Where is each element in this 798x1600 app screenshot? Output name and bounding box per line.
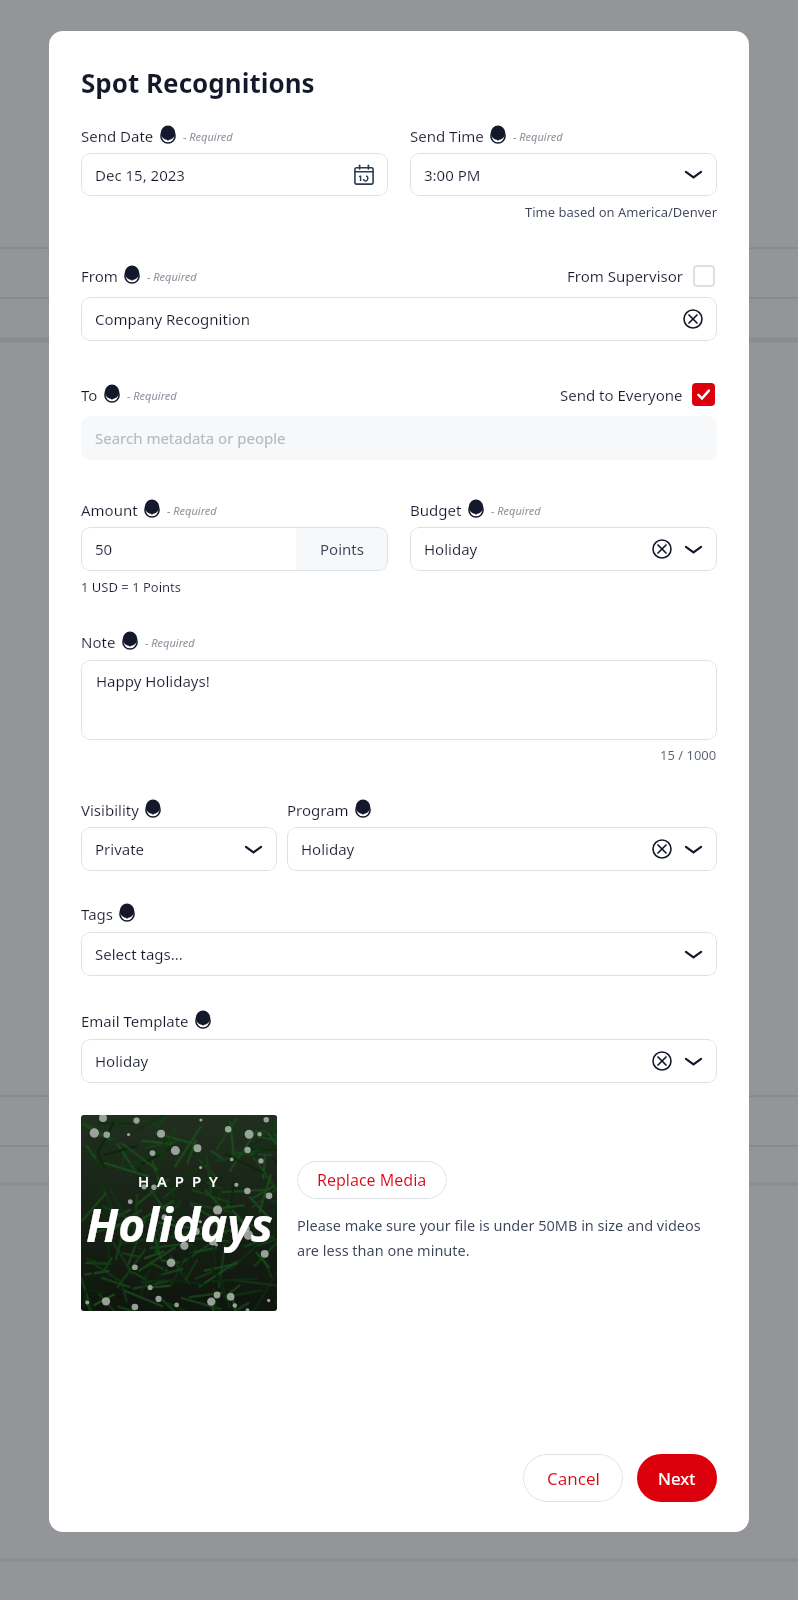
staticText: - Required (147, 269, 197, 284)
staticText: Please make sure your file is under 50MB… (297, 1215, 717, 1260)
staticText: - Required (167, 503, 217, 518)
staticText: Budget (410, 500, 462, 520)
staticText: - Required (127, 388, 177, 403)
other: Clear (652, 839, 672, 859)
button[interactable]: From Supervisor (565, 263, 717, 289)
staticText: Program (287, 800, 349, 820)
staticText: Happy Holidays! (96, 671, 210, 691)
staticText: Send Time (410, 126, 484, 146)
button[interactable]: Next (637, 1454, 717, 1502)
staticText: 50 (95, 539, 113, 559)
staticText: - Required (145, 635, 195, 650)
staticText: Company Recognition (95, 309, 251, 329)
button[interactable]: 3:00 PM (410, 153, 717, 196)
staticText: Time based on America/Denver (525, 203, 717, 221)
staticText: Visibility (81, 800, 139, 820)
button[interactable]: Replace Media (297, 1161, 447, 1199)
button[interactable]: Send to Everyone (558, 381, 717, 408)
staticText: - Required (491, 503, 541, 518)
button[interactable]: Select tags... (81, 932, 717, 976)
button[interactable]: Holiday (410, 527, 717, 571)
staticText: Holiday (301, 839, 355, 859)
staticText: Send Date (81, 126, 154, 146)
button[interactable]: Happy Holidays! (81, 660, 717, 740)
staticText: Select tags... (95, 944, 183, 964)
staticText: Points (320, 539, 364, 559)
staticText: Replace Media (317, 1169, 427, 1191)
staticText: Next (658, 1467, 696, 1490)
staticText: Private (95, 839, 145, 859)
staticText: Cancel (547, 1467, 600, 1490)
staticText: Email Template (81, 1011, 189, 1031)
staticText: 15 / 1000 (660, 746, 717, 764)
other: Clear (652, 1051, 672, 1071)
staticText: Holidays (86, 1193, 273, 1256)
other: Clear (652, 539, 672, 559)
button[interactable]: Search metadata or people (81, 416, 717, 460)
staticText: Holiday (95, 1051, 149, 1071)
staticText: Send to Everyone (560, 385, 683, 405)
button[interactable]: Dec 15, 2023 (81, 153, 388, 196)
staticText: Spot Recognitions (81, 65, 315, 100)
staticText: Amount (81, 500, 138, 520)
staticText: Search metadata or people (95, 428, 286, 448)
staticText: - Required (183, 129, 233, 144)
button[interactable]: Private (81, 827, 277, 871)
staticText: To (81, 385, 98, 405)
other: Clear (683, 309, 703, 329)
button[interactable]: 50 (81, 527, 388, 571)
staticText: 1 USD = 1 Points (81, 578, 181, 596)
staticText: 3:00 PM (424, 165, 481, 185)
button[interactable]: Cancel (523, 1454, 623, 1502)
staticText: From (81, 266, 118, 286)
button[interactable]: Company Recognition (81, 297, 717, 341)
staticText: Holiday (424, 539, 478, 559)
staticText: Tags (81, 904, 113, 924)
button[interactable]: Selected media (81, 1115, 277, 1311)
button[interactable]: Holiday (287, 827, 717, 871)
staticText: Note (81, 632, 116, 652)
button[interactable]: Holiday (81, 1039, 717, 1083)
staticText: Dec 15, 2023 (95, 165, 185, 185)
staticText: From Supervisor (567, 266, 684, 286)
staticText: H A P P Y (138, 1171, 220, 1191)
staticText: - Required (513, 129, 563, 144)
